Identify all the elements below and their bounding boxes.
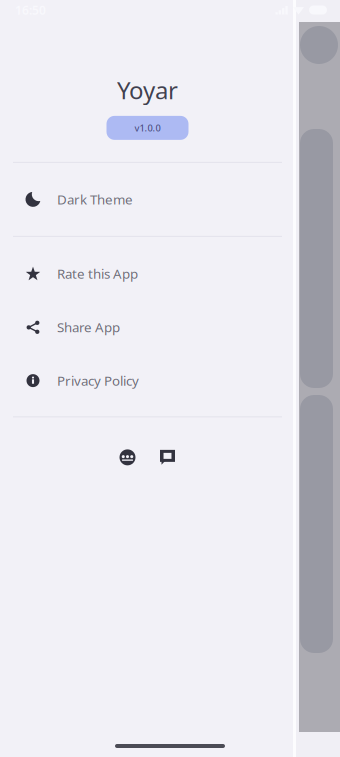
button[interactable]: Website <box>114 444 140 470</box>
button[interactable]: Share App <box>0 300 295 354</box>
staticText: v1.0.0 <box>134 122 160 134</box>
staticText: Yoyar <box>117 74 178 106</box>
staticText: Rate this App <box>57 265 138 282</box>
staticText: Dark Theme <box>57 190 133 208</box>
button[interactable]: Contact <box>154 444 180 470</box>
staticText: Privacy Policy <box>57 372 139 389</box>
staticText: Share App <box>57 318 120 336</box>
button[interactable]: Privacy Policy <box>0 354 295 407</box>
button[interactable]: Dark Theme <box>0 163 295 236</box>
button[interactable]: Rate this App <box>0 247 295 300</box>
